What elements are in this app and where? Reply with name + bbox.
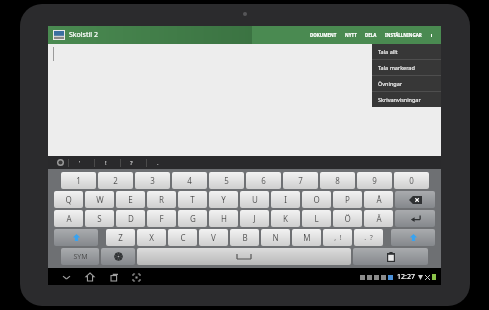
button[interactable]: 8 bbox=[320, 172, 355, 189]
button[interactable]: 1 bbox=[61, 172, 96, 189]
button[interactable]: Settings bbox=[101, 248, 135, 265]
staticText: Tala markerad bbox=[378, 64, 415, 71]
staticText: N bbox=[272, 232, 279, 243]
button[interactable]: More options bbox=[426, 26, 436, 44]
staticText: Q bbox=[65, 194, 72, 205]
staticText: T bbox=[190, 194, 195, 205]
button[interactable]: C bbox=[168, 229, 197, 246]
button[interactable]: . ? bbox=[354, 229, 383, 246]
button[interactable]: O bbox=[302, 191, 331, 208]
staticText: 5 bbox=[224, 175, 229, 186]
button[interactable]: K bbox=[271, 210, 300, 227]
button[interactable]: ' bbox=[69, 156, 90, 169]
button[interactable]: D bbox=[116, 210, 145, 227]
button[interactable]: T bbox=[178, 191, 207, 208]
staticText: Tala allt bbox=[378, 48, 398, 55]
button[interactable]: Z bbox=[106, 229, 135, 246]
button[interactable]: 4 bbox=[172, 172, 207, 189]
staticText: S bbox=[97, 213, 102, 224]
button[interactable]: N bbox=[261, 229, 290, 246]
staticText: 1 bbox=[76, 175, 81, 186]
staticText: W bbox=[96, 194, 104, 205]
button[interactable]: H bbox=[209, 210, 238, 227]
staticText: I bbox=[284, 194, 287, 205]
button[interactable]: 0 bbox=[394, 172, 429, 189]
button[interactable]: Clipboard bbox=[353, 248, 428, 265]
staticText: INSTÄLLNINGAR bbox=[385, 32, 422, 38]
button[interactable]: Y bbox=[209, 191, 238, 208]
staticText: H bbox=[221, 213, 227, 224]
staticText: C bbox=[180, 232, 186, 243]
button[interactable]: Back bbox=[60, 271, 72, 283]
button[interactable]: L bbox=[302, 210, 331, 227]
staticText: J bbox=[253, 213, 256, 224]
button[interactable]: M bbox=[292, 229, 321, 246]
staticText: U bbox=[252, 194, 258, 205]
staticText: . ? bbox=[364, 233, 373, 243]
button[interactable]: INSTÄLLNINGAR bbox=[381, 32, 426, 38]
button[interactable]: G bbox=[178, 210, 207, 227]
button[interactable]: . bbox=[147, 156, 168, 169]
button[interactable]: P bbox=[333, 191, 362, 208]
staticText: , ! bbox=[334, 233, 342, 243]
button[interactable]: Space bbox=[137, 248, 351, 265]
button[interactable]: X bbox=[137, 229, 166, 246]
button[interactable]: J bbox=[240, 210, 269, 227]
button[interactable]: Shift bbox=[54, 229, 98, 246]
button[interactable]: 2 bbox=[98, 172, 133, 189]
button[interactable]: V bbox=[199, 229, 228, 246]
button[interactable]: Shift bbox=[391, 229, 435, 246]
button[interactable]: Screenshot bbox=[130, 271, 142, 283]
button[interactable]: F bbox=[147, 210, 176, 227]
button[interactable]: Ö bbox=[333, 210, 362, 227]
button[interactable]: A bbox=[54, 210, 83, 227]
button[interactable]: , ! bbox=[323, 229, 352, 246]
staticText: Skolstil 2 bbox=[69, 30, 98, 40]
button[interactable]: DELA bbox=[361, 32, 381, 38]
staticText: NYTT bbox=[345, 32, 357, 38]
button[interactable]: Recents bbox=[108, 271, 120, 283]
button[interactable]: Skrivanvisningar bbox=[372, 92, 441, 107]
button[interactable]: Tala allt bbox=[372, 44, 441, 59]
button[interactable]: DOKUMENT bbox=[306, 32, 341, 38]
staticText: Skrivanvisningar bbox=[378, 96, 421, 103]
button[interactable]: Å bbox=[364, 191, 393, 208]
staticText: A bbox=[66, 213, 72, 224]
staticText: DELA bbox=[365, 32, 377, 38]
button[interactable]: Backspace bbox=[395, 191, 435, 208]
button[interactable]: 7 bbox=[283, 172, 318, 189]
staticText: F bbox=[159, 213, 164, 224]
staticText: ? bbox=[130, 159, 133, 167]
button[interactable]: I bbox=[271, 191, 300, 208]
button[interactable]: 6 bbox=[246, 172, 281, 189]
button[interactable]: ? bbox=[121, 156, 142, 169]
button[interactable]: Övningar bbox=[372, 76, 441, 91]
staticText: O bbox=[313, 194, 320, 205]
button[interactable]: B bbox=[230, 229, 259, 246]
staticText: ! bbox=[105, 159, 107, 167]
button[interactable]: Home bbox=[84, 271, 96, 283]
staticText: ' bbox=[79, 159, 81, 167]
button[interactable]: Q bbox=[54, 191, 83, 208]
staticText: Å bbox=[376, 194, 382, 205]
button[interactable]: E bbox=[116, 191, 145, 208]
button[interactable]: Enter bbox=[395, 210, 435, 227]
staticText: 7 bbox=[298, 175, 303, 186]
button[interactable]: ! bbox=[95, 156, 116, 169]
button[interactable]: Ä bbox=[364, 210, 393, 227]
button[interactable]: NYTT bbox=[341, 32, 361, 38]
staticText: DOKUMENT bbox=[310, 32, 337, 38]
button[interactable]: 3 bbox=[135, 172, 170, 189]
button[interactable]: W bbox=[85, 191, 114, 208]
button[interactable]: 9 bbox=[357, 172, 392, 189]
staticText: 8 bbox=[335, 175, 340, 186]
button[interactable]: 5 bbox=[209, 172, 244, 189]
button[interactable]: SYM bbox=[61, 248, 99, 265]
staticText: E bbox=[128, 194, 133, 205]
button[interactable]: U bbox=[240, 191, 269, 208]
button[interactable]: App icon bbox=[53, 30, 65, 40]
button[interactable]: Tala markerad bbox=[372, 60, 441, 75]
button[interactable]: S bbox=[85, 210, 114, 227]
button[interactable]: Speak bbox=[57, 159, 64, 166]
button[interactable]: R bbox=[147, 191, 176, 208]
